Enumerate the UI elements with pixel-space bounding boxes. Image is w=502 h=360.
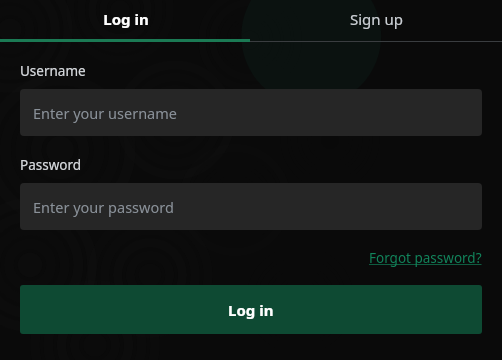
staticText: Password: [20, 156, 82, 174]
button[interactable]: Enter your username: [20, 89, 482, 136]
button[interactable]: Log in: [0, 0, 251, 42]
button[interactable]: Log in: [20, 285, 482, 334]
staticText: Username: [20, 62, 86, 80]
staticText: Enter your username: [33, 103, 177, 123]
button[interactable]: Forgot password?: [369, 247, 482, 269]
staticText: Sign up: [350, 9, 403, 29]
staticText: Enter your password: [33, 197, 174, 217]
staticText: Log in: [228, 300, 274, 320]
button[interactable]: Enter your password: [20, 183, 482, 230]
staticText: Log in: [103, 9, 149, 29]
staticText: Forgot password?: [369, 249, 482, 267]
button[interactable]: Sign up: [251, 0, 502, 42]
